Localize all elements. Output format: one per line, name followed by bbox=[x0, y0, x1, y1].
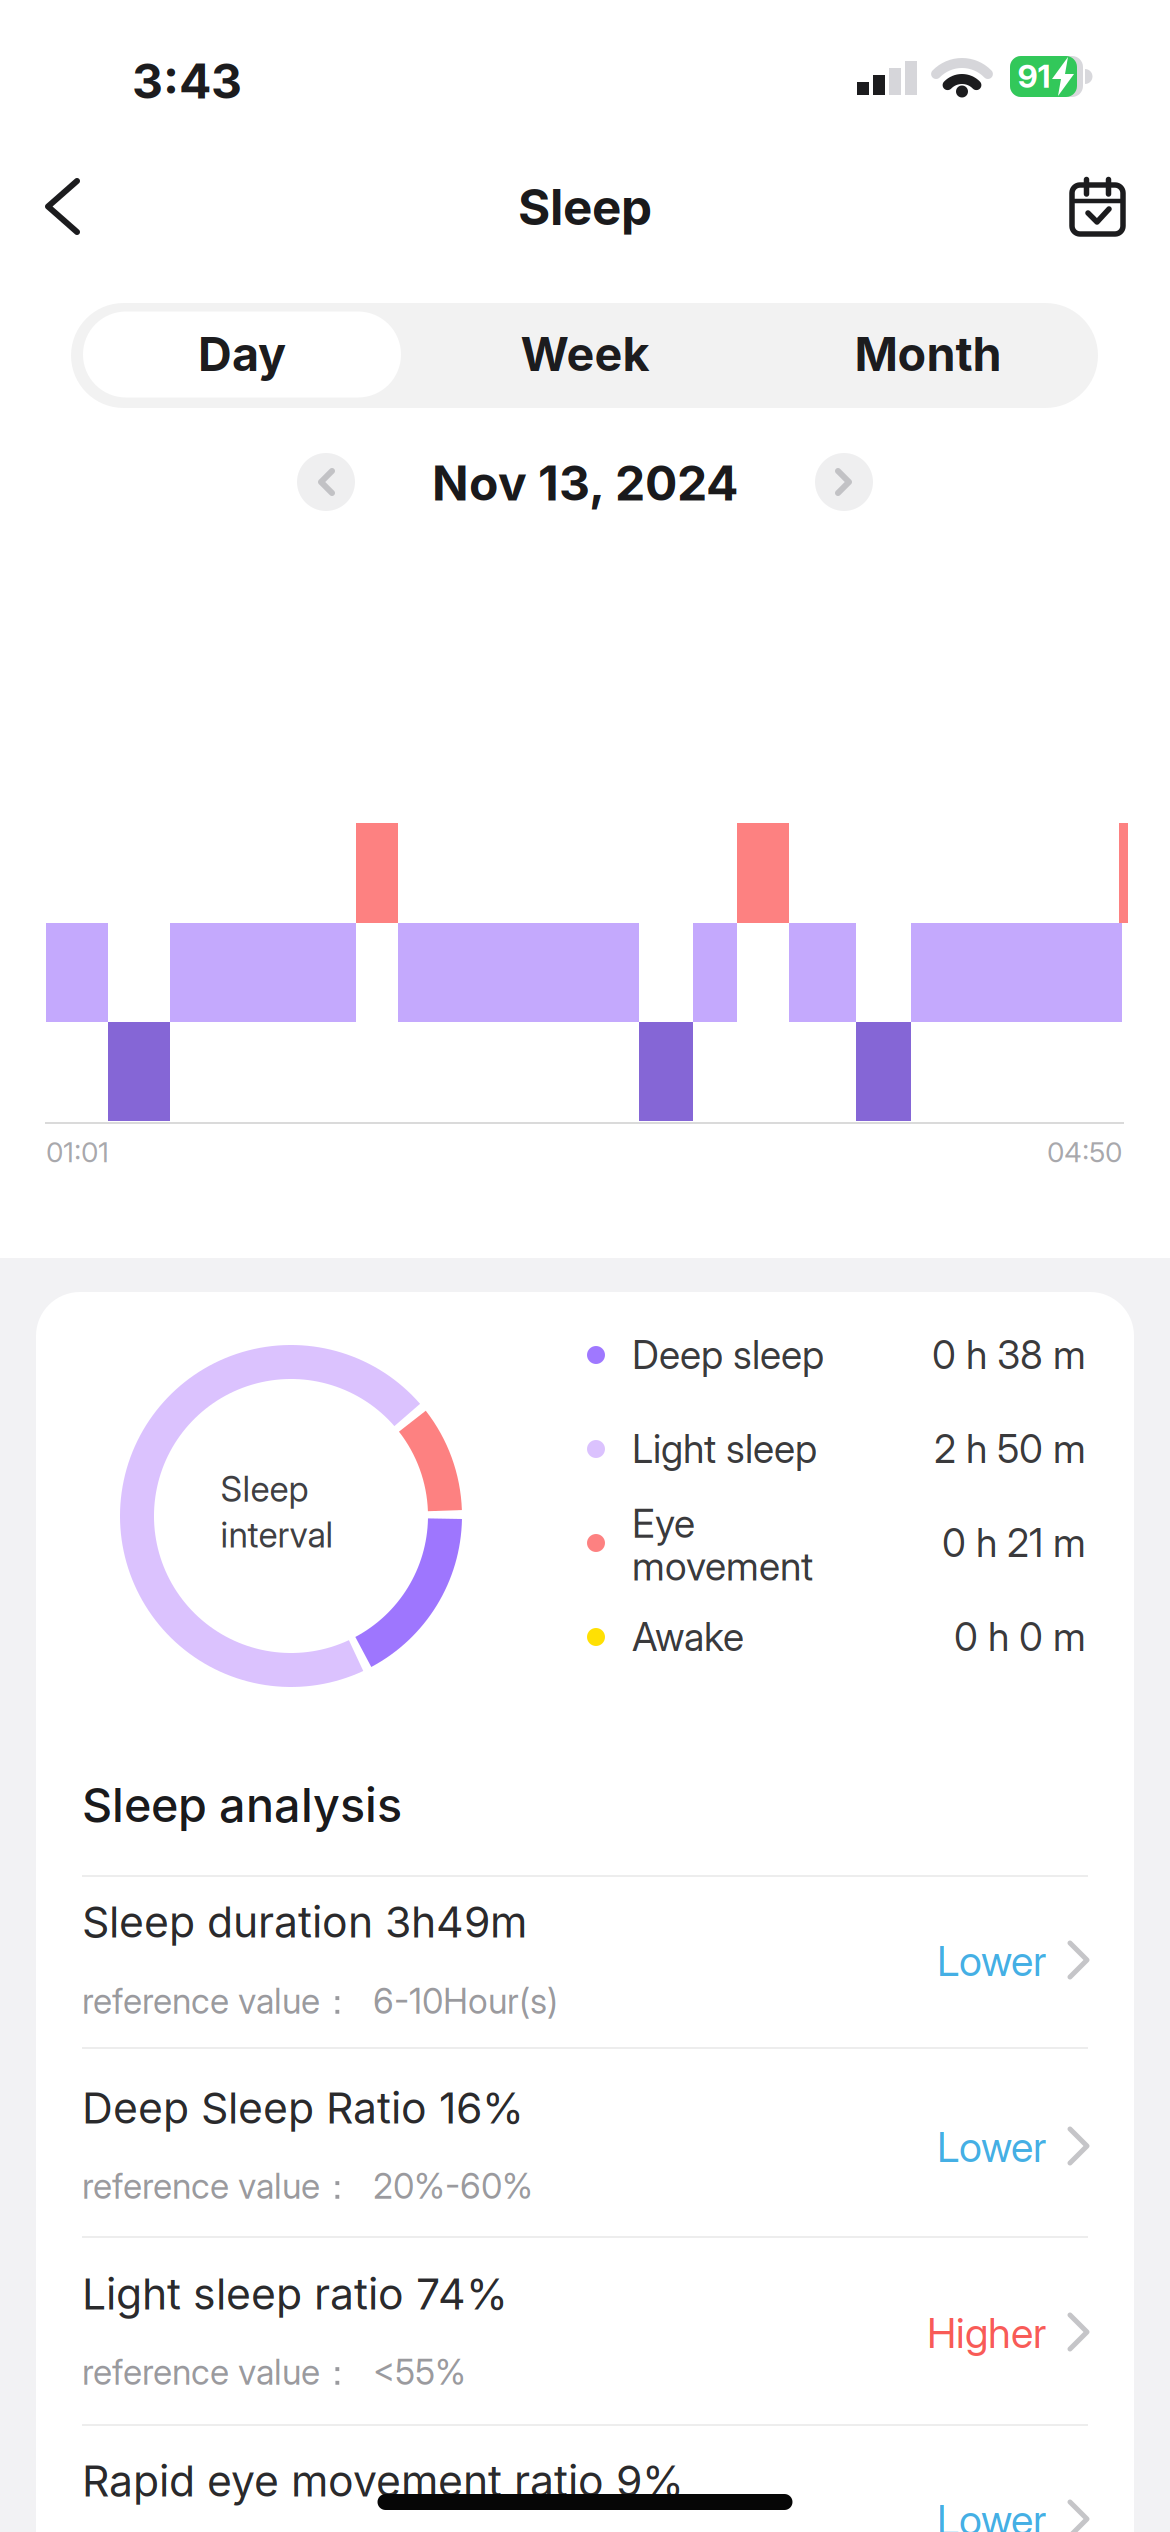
staticText: 0 h 21 m bbox=[942, 1520, 1086, 1566]
staticText: Month bbox=[854, 326, 1001, 382]
staticText: 0 h 38 m bbox=[932, 1332, 1086, 1378]
button[interactable]: Previous day bbox=[296, 452, 356, 512]
staticText: 01:01 bbox=[46, 1135, 109, 1169]
button[interactable]: Day bbox=[77, 301, 407, 406]
staticText: Sleep bbox=[518, 177, 652, 237]
staticText: interval bbox=[220, 1514, 333, 1556]
staticText: reference value： <55% bbox=[82, 2351, 466, 2395]
button[interactable]: Month bbox=[763, 301, 1093, 406]
staticText: Deep sleep bbox=[632, 1332, 824, 1378]
button[interactable]: Deep Sleep Ratio 16% bbox=[82, 2048, 1088, 2237]
staticText: Day bbox=[198, 326, 286, 382]
staticText: Nov 13, 2024 bbox=[432, 454, 738, 512]
staticText: Awake bbox=[632, 1614, 744, 1660]
button[interactable]: Next day bbox=[814, 452, 874, 512]
button[interactable]: Sleep duration 3h49m bbox=[82, 1876, 1088, 2048]
staticText: 2 h 50 m bbox=[934, 1426, 1086, 1472]
staticText: Lower bbox=[937, 2495, 1046, 2532]
button[interactable]: Rapid eye movement ratio 9% bbox=[82, 2425, 1088, 2532]
staticText: Light sleep ratio 74% bbox=[82, 2268, 508, 2320]
staticText: 3:43 bbox=[132, 52, 242, 110]
button[interactable]: Back bbox=[34, 171, 106, 243]
button[interactable]: Light sleep ratio 74% bbox=[82, 2237, 1088, 2425]
staticText: Deep Sleep Ratio 16% bbox=[82, 2082, 524, 2134]
staticText: Sleep bbox=[220, 1468, 308, 1510]
staticText: 91 bbox=[1017, 57, 1050, 95]
staticText: Light sleep bbox=[632, 1426, 817, 1472]
staticText: Sleep duration 3h49m bbox=[82, 1896, 527, 1948]
staticText: Week bbox=[520, 326, 649, 382]
staticText: Lower bbox=[937, 2122, 1046, 2172]
button[interactable]: Calendar bbox=[1061, 171, 1133, 243]
button[interactable]: Week bbox=[420, 301, 750, 406]
staticText: Sleep analysis bbox=[82, 1777, 402, 1833]
staticText: Rapid eye movement ratio 9% bbox=[82, 2455, 684, 2507]
staticText: reference value： 20%-60% bbox=[82, 2165, 533, 2209]
staticText: Lower bbox=[937, 1936, 1046, 1986]
staticText: reference value： 6-10Hour(s) bbox=[82, 1980, 558, 2024]
staticText: 04:50 bbox=[1047, 1135, 1122, 1169]
staticText: Higher bbox=[927, 2308, 1046, 2358]
staticText: 0 h 0 m bbox=[954, 1614, 1086, 1660]
staticText: movement bbox=[632, 1543, 813, 1590]
staticText: Eye bbox=[632, 1500, 695, 1547]
